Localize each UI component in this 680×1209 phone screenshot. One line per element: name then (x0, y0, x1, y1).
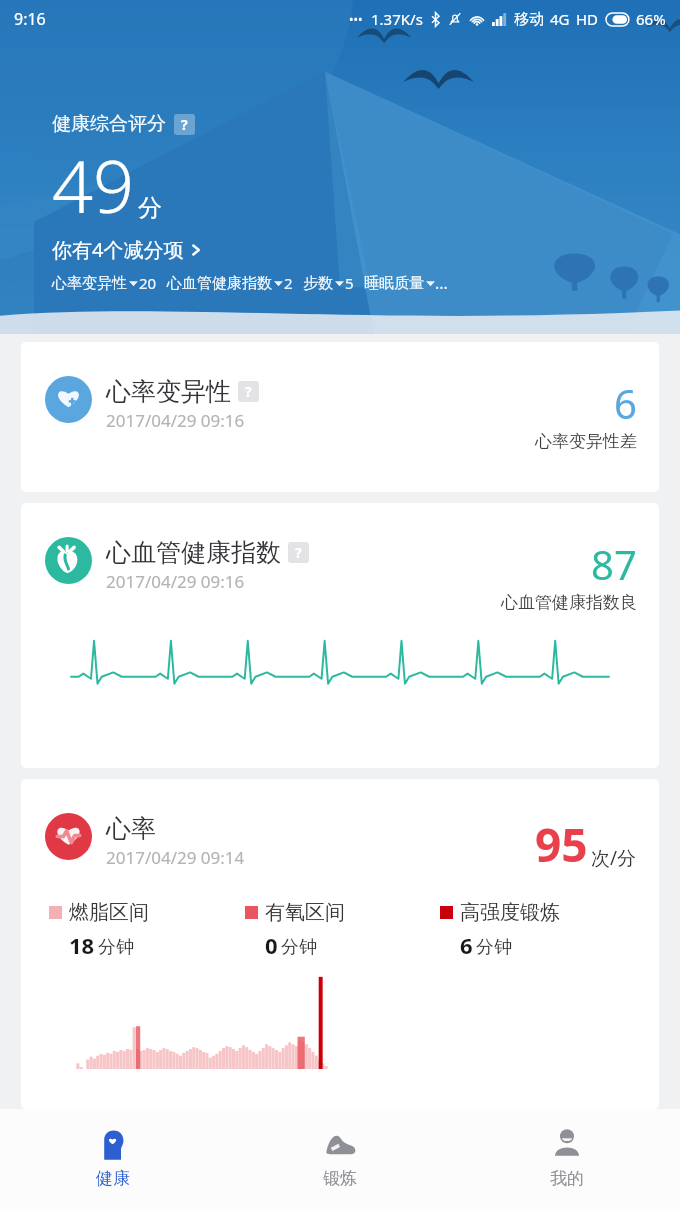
staticText: 分 (138, 193, 162, 223)
staticText: 2017/04/29 09:16 (106, 409, 245, 432)
button[interactable]: 心率 (21, 779, 659, 1109)
button[interactable]: 健康综合评分说明 (174, 114, 195, 135)
staticText: 6 (614, 376, 637, 430)
button[interactable]: 心血管健康指数 (21, 503, 659, 768)
staticText: 分钟 (476, 936, 512, 959)
staticText: 分钟 (98, 936, 134, 959)
staticText: 你有4个减分项 (52, 236, 184, 263)
staticText: 健康 (96, 1168, 130, 1189)
button[interactable]: 你有4个减分项 (52, 236, 204, 263)
staticText: 心血管健康指数 (106, 537, 281, 568)
staticText: 心率变异性 (106, 376, 231, 407)
staticText: 1.37K/s (371, 9, 423, 29)
staticText: ? (295, 543, 302, 562)
button[interactable]: 我的 (453, 1109, 680, 1209)
staticText: 心率 (106, 813, 156, 844)
staticText: 2017/04/29 09:14 (106, 846, 245, 869)
staticText: 我的 (550, 1168, 584, 1189)
staticText: 87 (591, 537, 637, 591)
staticText: 20 (139, 273, 157, 293)
staticText: ... (435, 272, 448, 294)
staticText: 心率变异性差 (535, 431, 637, 452)
staticText: 锻炼 (323, 1168, 357, 1189)
staticText: 有氧区间 (265, 900, 345, 925)
button[interactable]: 说明 (288, 542, 309, 563)
staticText: 心血管健康指数良 (501, 592, 637, 613)
staticText: 2017/04/29 09:16 (106, 570, 245, 593)
staticText: 健康综合评分 (52, 112, 166, 136)
button[interactable]: 心率变异性 (21, 342, 659, 492)
staticText: 心率变异性 (52, 274, 127, 293)
staticText: HD (576, 9, 599, 29)
staticText: 4G (550, 9, 570, 29)
staticText: 0 (265, 930, 278, 960)
staticText: 5 (345, 273, 354, 293)
staticText: 睡眠质量 (364, 274, 424, 293)
staticText: 燃脂区间 (69, 900, 149, 925)
staticText: ? (181, 115, 188, 134)
staticText: ? (245, 382, 252, 401)
staticText: 2 (284, 273, 293, 293)
button[interactable]: 说明 (238, 381, 259, 402)
staticText: 次/分 (591, 845, 637, 871)
staticText: 49 (52, 136, 135, 234)
button[interactable]: 健康 (0, 1109, 226, 1209)
staticText: 心血管健康指数 (167, 274, 272, 293)
staticText: ••• (349, 11, 363, 27)
button[interactable]: 锻炼 (226, 1109, 453, 1209)
staticText: 6 (460, 930, 473, 960)
staticText: 9:16 (14, 8, 46, 30)
staticText: 移动 (514, 10, 544, 29)
staticText: 步数 (303, 274, 333, 293)
staticText: 分钟 (281, 936, 317, 959)
staticText: 66% (636, 9, 666, 29)
staticText: 18 (69, 930, 95, 960)
staticText: 95 (535, 813, 588, 876)
staticText: 高强度锻炼 (460, 900, 560, 925)
